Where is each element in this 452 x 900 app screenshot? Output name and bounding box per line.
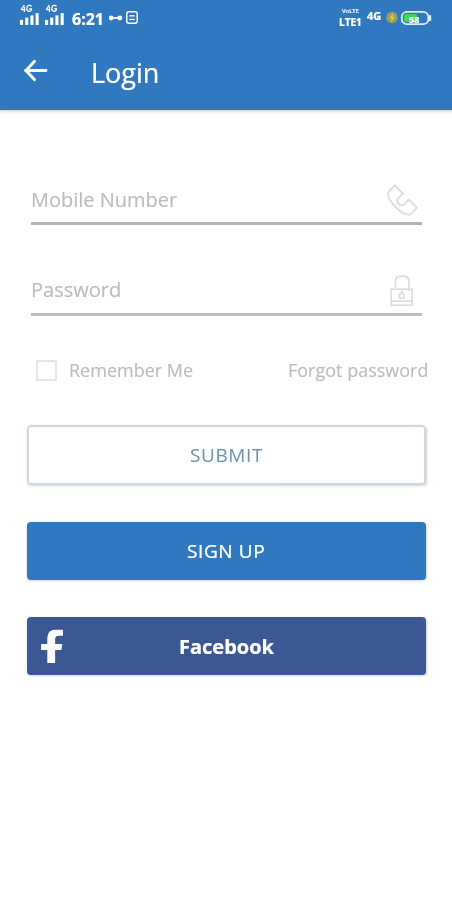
staticText: 6:21	[72, 8, 105, 30]
staticText: Password	[31, 276, 122, 303]
staticText: 4G	[367, 8, 382, 23]
staticText: 58	[409, 13, 420, 25]
staticText: Login	[91, 54, 160, 91]
button[interactable]: Back	[12, 47, 59, 94]
button[interactable]: Remember Me	[30, 354, 198, 387]
staticText: LTE1	[339, 15, 362, 29]
staticText: SUBMIT	[190, 442, 264, 468]
staticText: VoLTE	[342, 7, 359, 15]
staticText: Mobile Number	[31, 186, 178, 213]
button[interactable]: SUBMIT	[27, 425, 426, 485]
staticText: Remember Me	[69, 358, 194, 383]
staticText: Facebook	[179, 633, 274, 660]
button[interactable]: Facebook	[27, 617, 426, 675]
button[interactable]: SIGN UP	[27, 522, 426, 580]
staticText: SIGN UP	[187, 538, 266, 564]
button[interactable]: Forgot password	[280, 352, 452, 389]
